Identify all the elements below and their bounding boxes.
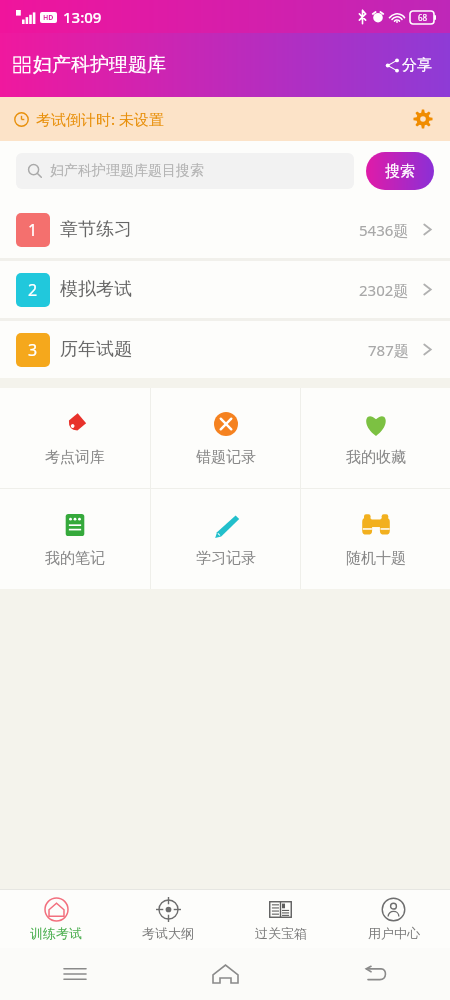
button[interactable]: 2 [0,261,450,318]
staticText: 我的收藏 [346,448,406,467]
button[interactable]: 学习记录 [151,489,300,589]
staticText: 68 [418,12,428,23]
button[interactable]: 用户中心 [337,890,450,948]
staticText: HD [43,13,54,23]
button[interactable]: 训练考试 [0,890,112,948]
button[interactable]: 妇产科护理题库题目搜索 [16,153,354,189]
staticText: 训练考试 [30,925,82,941]
staticText: 考试大纲 [142,925,194,941]
staticText: 考试倒计时: 未设置 [36,109,164,129]
button[interactable]: 分享 [381,52,436,79]
button[interactable]: 过关宝箱 [224,890,337,948]
button[interactable]: 妇产科护理题库 [14,53,166,77]
staticText: 妇产科护理题库题目搜索 [50,162,204,180]
button[interactable]: 3 [0,321,450,378]
staticText: 错题记录 [196,448,256,467]
button[interactable]: 设置倒计时 [410,106,436,132]
button[interactable]: 考试大纲 [112,890,224,948]
button[interactable]: 错题记录 [151,388,300,488]
staticText: 13:09 [63,7,102,27]
button[interactable]: Recent apps [0,948,150,1000]
button[interactable]: Back [300,948,450,1000]
staticText: 787题 [368,340,409,360]
button[interactable]: 考试倒计时: 未设置 [0,97,450,141]
staticText: 模拟考试 [60,278,132,301]
button[interactable]: 我的笔记 [0,489,150,589]
button[interactable]: 1 [0,201,450,258]
staticText: 妇产科护理题库 [33,53,166,77]
staticText: 用户中心 [368,925,420,941]
staticText: 分享 [402,56,432,75]
staticText: 历年试题 [60,338,132,361]
staticText: 3 [28,339,38,361]
staticText: 1 [28,219,38,241]
staticText: 2 [28,279,38,301]
staticText: 考点词库 [45,448,105,467]
staticText: 随机十题 [346,549,406,568]
staticText: 我的笔记 [45,549,105,568]
staticText: 学习记录 [196,549,256,568]
staticText: 过关宝箱 [255,925,307,941]
button[interactable]: 我的收藏 [301,388,450,488]
button[interactable]: 随机十题 [301,489,450,589]
staticText: 章节练习 [60,218,132,241]
staticText: 搜索 [385,162,415,181]
button[interactable]: 考点词库 [0,388,150,488]
button[interactable]: Home [150,948,300,1000]
staticText: 5436题 [359,220,409,240]
staticText: 2302题 [359,280,409,300]
button[interactable]: 搜索 [366,152,434,190]
